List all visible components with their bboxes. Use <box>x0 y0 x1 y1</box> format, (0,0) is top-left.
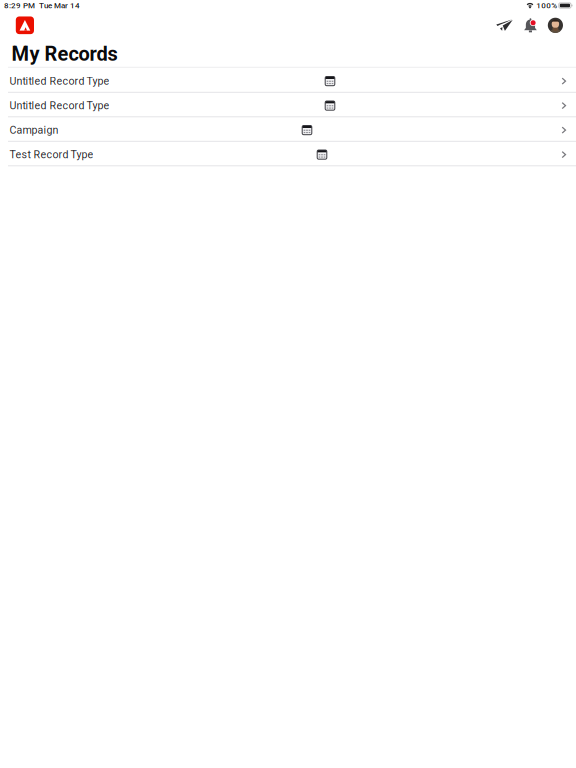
staticText: Untitled Record Type <box>9 99 109 112</box>
staticText: My Records <box>12 42 118 65</box>
staticText: Test Record Type <box>9 148 93 161</box>
staticText: Campaign <box>9 124 58 136</box>
button[interactable]: Untitled Record Type <box>0 92 576 117</box>
staticText: 100% <box>536 1 557 10</box>
button[interactable]: Send <box>491 19 518 31</box>
button[interactable]: Notifications <box>518 18 542 32</box>
staticText: Tue Mar 14 <box>39 1 80 10</box>
staticText: Untitled Record Type <box>9 75 109 87</box>
button[interactable]: Account <box>542 18 576 33</box>
button[interactable]: Untitled Record Type <box>0 68 576 92</box>
button[interactable]: Adobe Experience Cloud <box>0 16 34 34</box>
button[interactable]: Campaign <box>0 117 576 141</box>
button[interactable]: Test Record Type <box>0 141 576 166</box>
staticText: 8:29 PM <box>4 1 35 10</box>
